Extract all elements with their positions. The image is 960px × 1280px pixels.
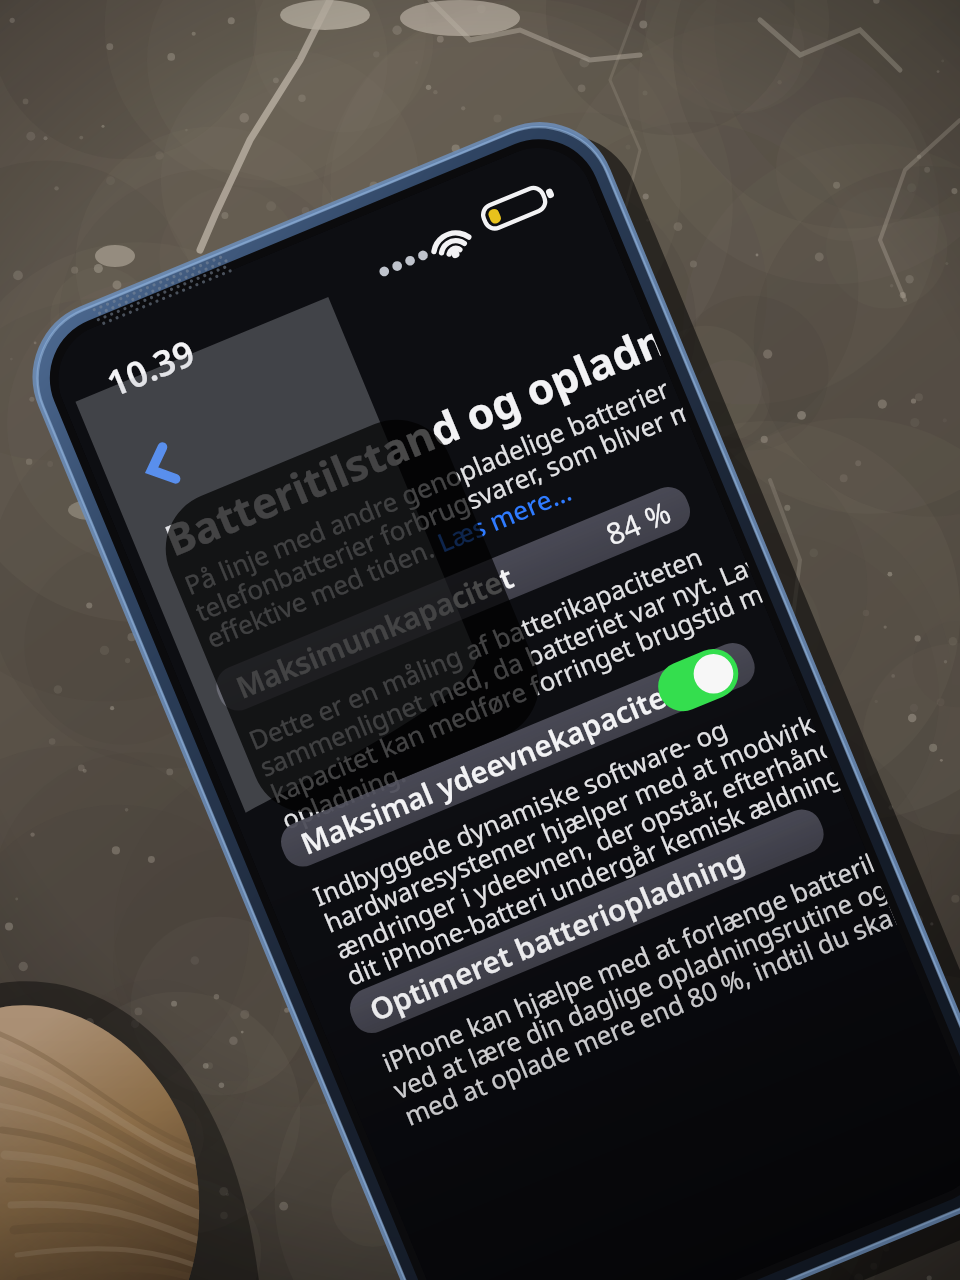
button[interactable]: Optimeret batteriopladning kontakt <box>0 0 120 70</box>
other: Photo of iPhone showing Battery Health s… <box>0 0 960 1280</box>
